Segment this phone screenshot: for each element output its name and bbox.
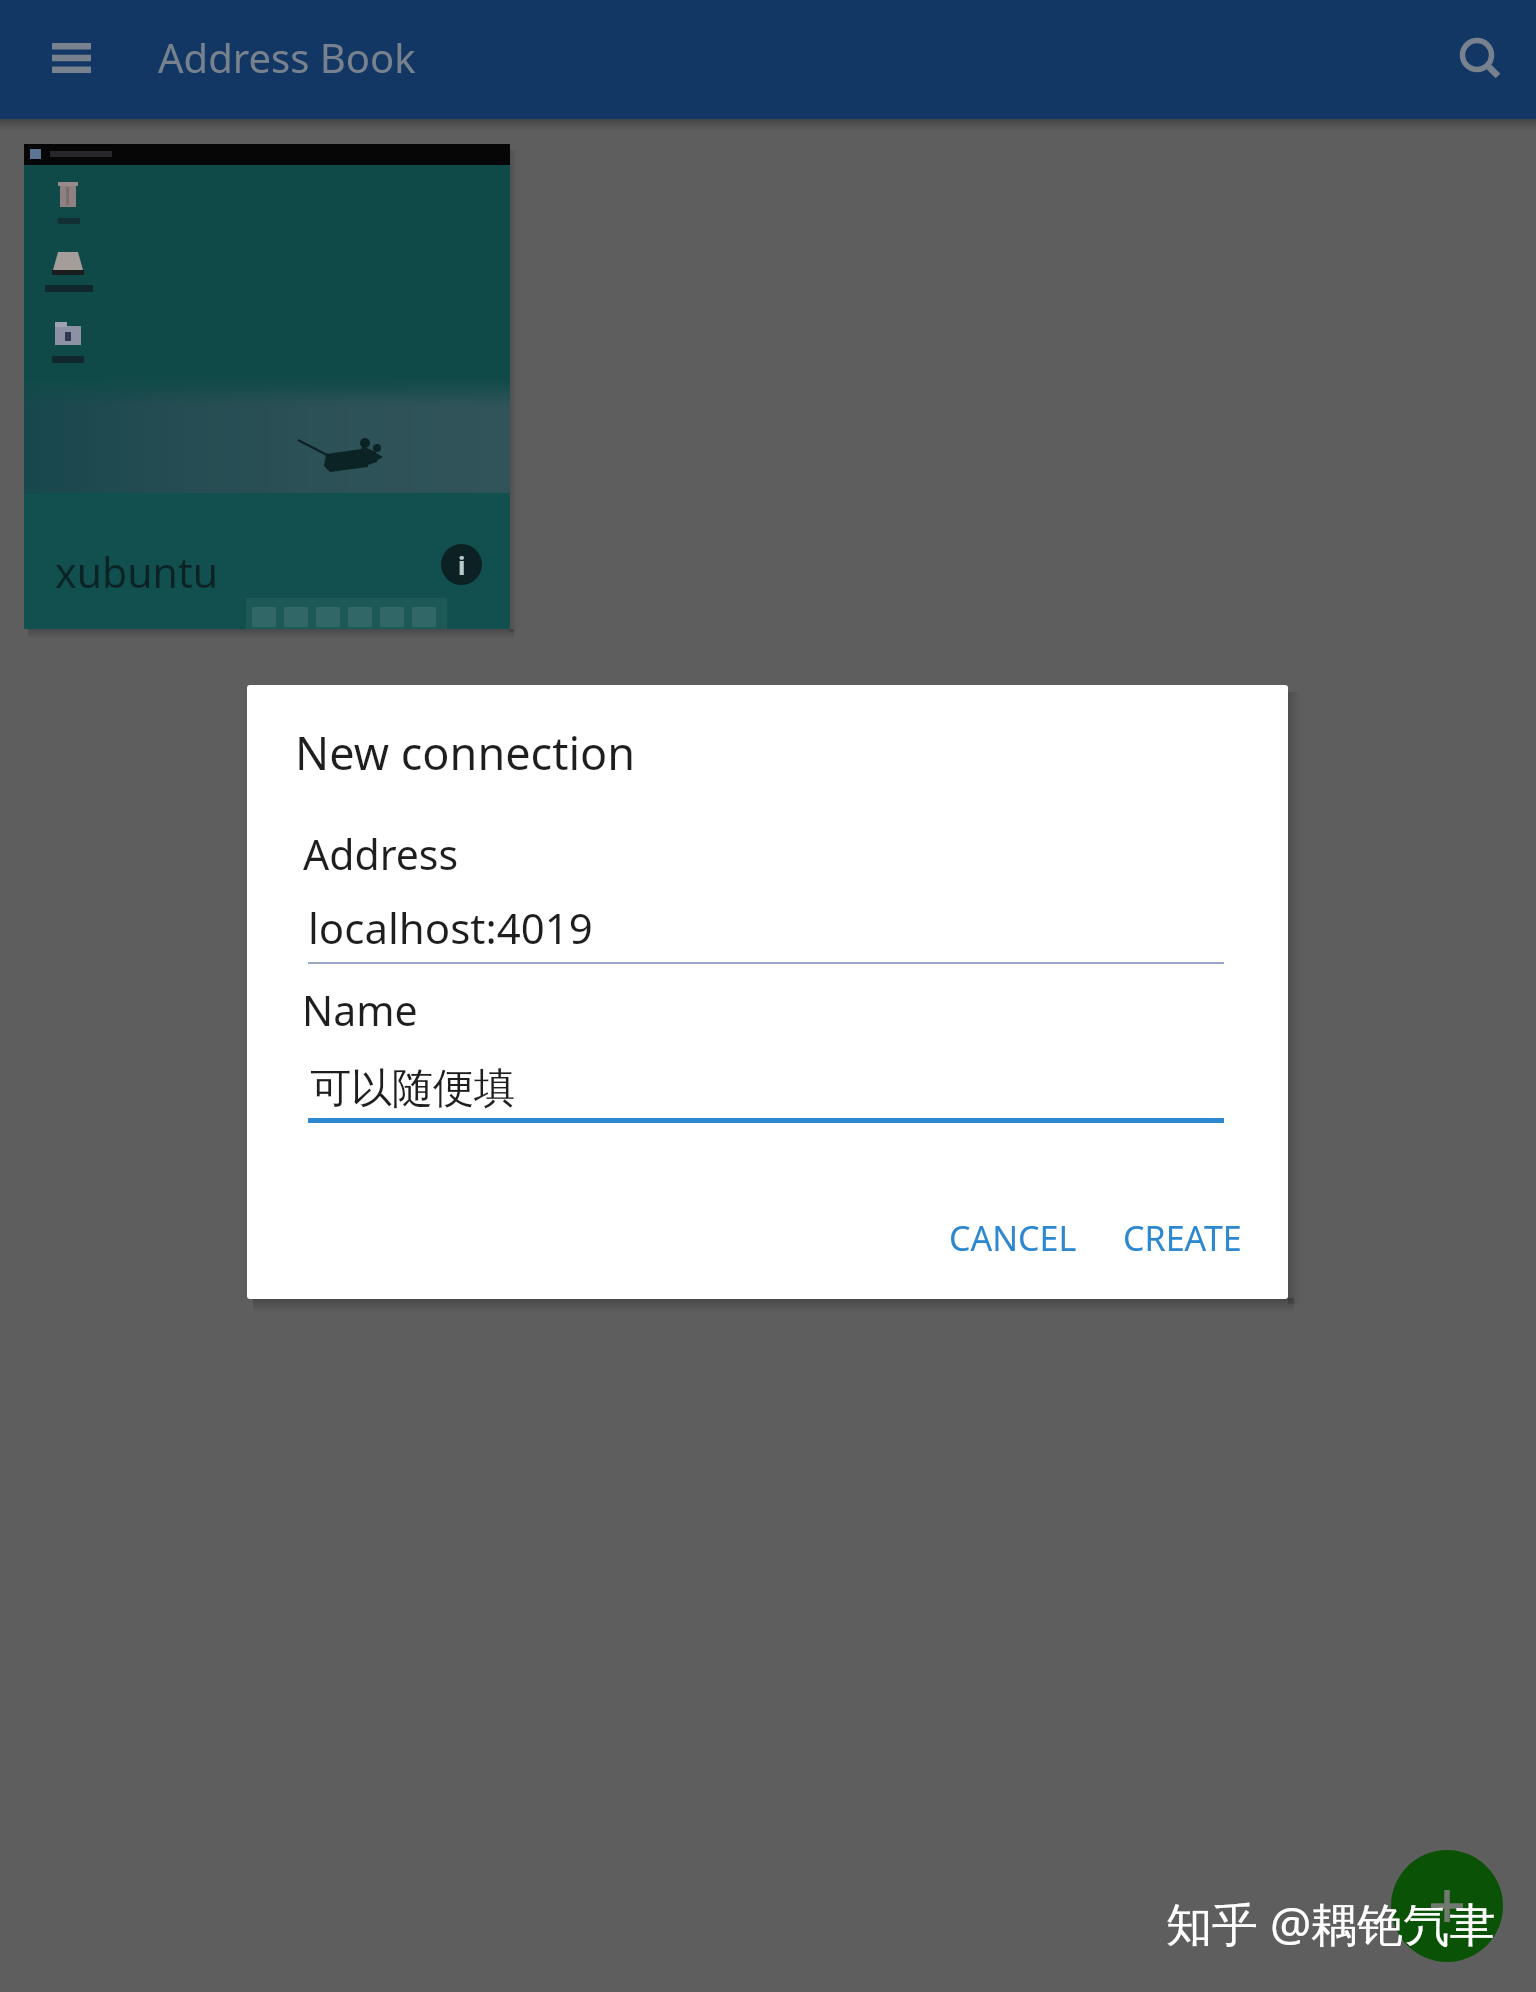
staticText: xubuntu — [55, 544, 219, 600]
button[interactable]: Menu — [36, 23, 106, 93]
staticText: New connection — [295, 722, 636, 783]
staticText: 可以随便填 — [310, 1063, 515, 1115]
staticText: localhost:4019 — [308, 899, 593, 956]
staticText: Address Book — [158, 30, 416, 84]
staticText: 知乎 @耦铯氕聿 — [1166, 1892, 1496, 1955]
staticText: Address — [303, 826, 459, 882]
button[interactable]: xubuntu — [24, 144, 510, 629]
button[interactable]: Add connection — [1391, 1850, 1503, 1962]
staticText: Name — [302, 982, 418, 1038]
staticText: i — [458, 548, 466, 582]
button[interactable]: Search — [1444, 23, 1520, 99]
button[interactable]: CREATE — [1109, 1204, 1255, 1272]
staticText: CANCEL — [949, 1215, 1077, 1261]
button[interactable]: CANCEL — [937, 1204, 1089, 1272]
staticText: CREATE — [1123, 1215, 1242, 1261]
button[interactable]: Info — [441, 544, 482, 585]
